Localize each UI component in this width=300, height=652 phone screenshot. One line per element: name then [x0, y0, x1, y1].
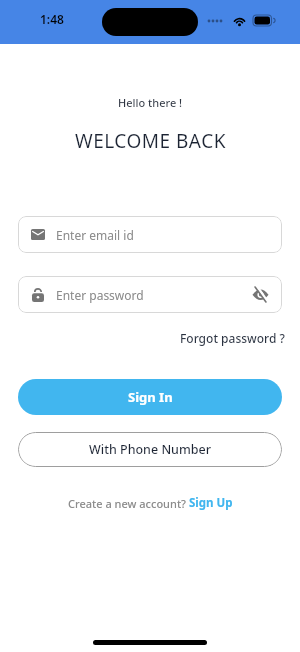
staticText: 1:48 — [40, 11, 64, 27]
staticText: Hello there ! — [118, 95, 183, 110]
staticText: WELCOME BACK — [75, 128, 226, 154]
button[interactable]: Sign In — [18, 379, 282, 415]
button[interactable]: Forgot password ? — [180, 330, 285, 346]
staticText: Enter email id — [56, 227, 134, 243]
button[interactable]: Enter password — [18, 276, 282, 313]
button[interactable]: With Phone Number — [18, 432, 282, 467]
staticText: With Phone Number — [89, 441, 211, 458]
staticText: Create a new account? — [68, 496, 189, 511]
staticText: Sign In — [128, 388, 173, 406]
staticText: Enter password — [56, 287, 144, 303]
button[interactable]: Enter email id — [18, 216, 282, 253]
button[interactable]: Sign Up — [189, 495, 233, 511]
